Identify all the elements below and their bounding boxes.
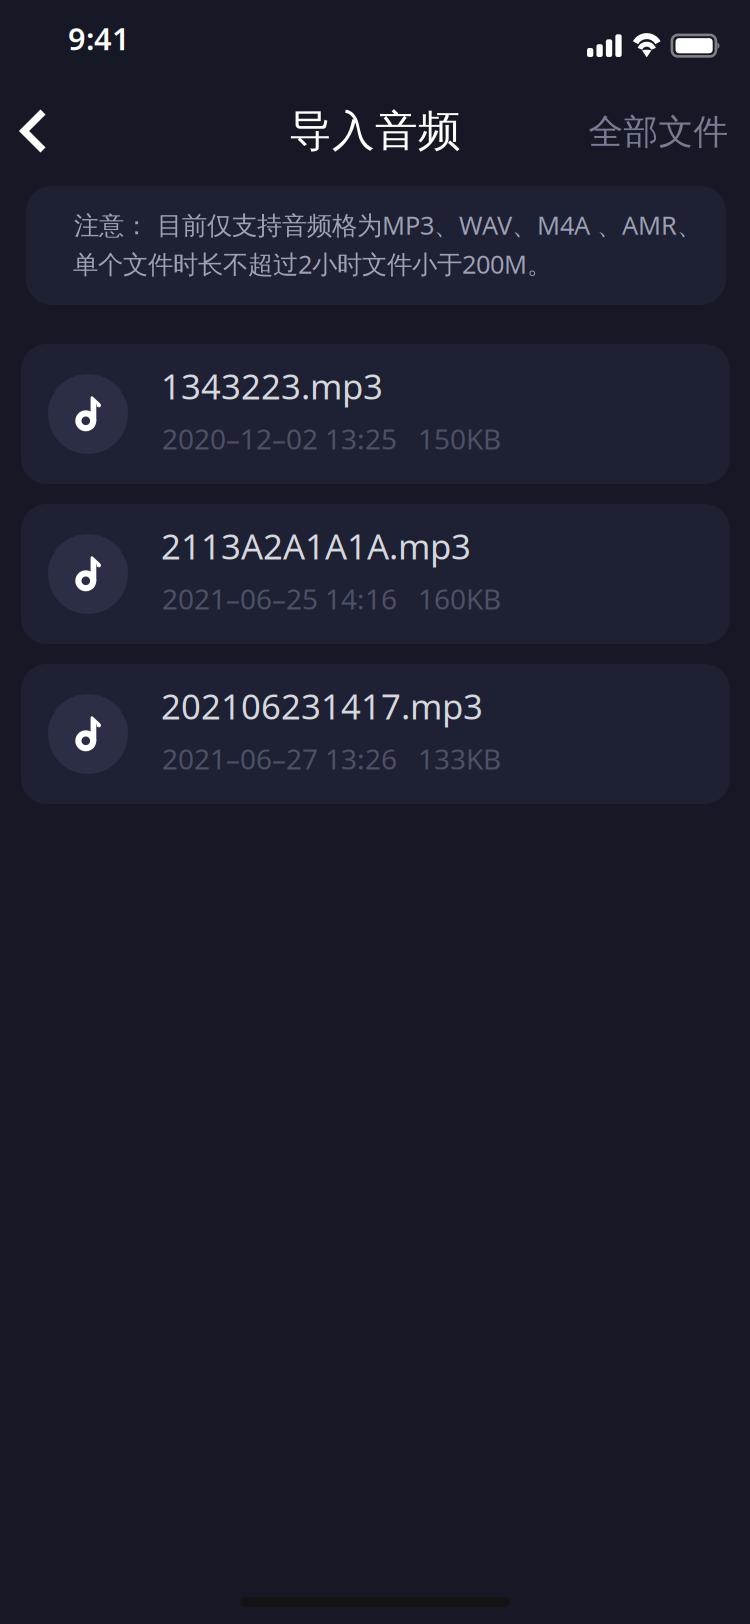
staticText: 导入音频 <box>289 105 461 157</box>
staticText: 注意： 目前仅支持音频格为MP3、WAV、M4A 、AMR、 <box>74 208 702 242</box>
staticText: 2021–06–27 13:26 133KB <box>162 740 501 777</box>
staticText: 2021–06–25 14:16 160KB <box>162 580 501 617</box>
staticText: 2020–12–02 13:25 150KB <box>162 420 501 457</box>
staticText: 单个文件时长不超过2小时文件小于200M。 <box>73 247 552 281</box>
staticText: 9:41 <box>68 18 130 59</box>
staticText: 202106231417.mp3 <box>161 683 483 729</box>
staticText: 1343223.mp3 <box>161 363 383 409</box>
button[interactable]: 2113A2A1A1A.mp3 <box>21 504 730 644</box>
staticText: 2113A2A1A1A.mp3 <box>161 523 471 569</box>
button[interactable]: 202106231417.mp3 <box>21 664 730 804</box>
button[interactable]: 1343223.mp3 <box>21 344 730 484</box>
button[interactable]: Back <box>0 91 70 171</box>
button[interactable]: 全部文件 <box>577 92 740 172</box>
staticText: 全部文件 <box>588 111 728 153</box>
